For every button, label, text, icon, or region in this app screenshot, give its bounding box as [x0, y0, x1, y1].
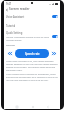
staticText: Quick Setting	[6, 31, 23, 35]
button[interactable]: Recents	[14, 104, 19, 109]
button[interactable]: Quick Setting	[4, 30, 60, 42]
staticText: Speech rate	[25, 52, 40, 56]
button[interactable]: Back	[4, 7, 9, 12]
staticText: Screen reader	[9, 7, 30, 11]
button[interactable]: Increase speech rate	[49, 49, 59, 58]
button[interactable]: Home	[30, 104, 35, 109]
staticText: Tutorial	[6, 24, 16, 28]
button[interactable]: Speech rate	[15, 49, 49, 58]
staticText: 9:41	[6, 2, 12, 6]
button[interactable]: Voice Assistant	[4, 12, 60, 21]
button[interactable]: Tutorial	[4, 21, 60, 30]
button[interactable]: Decrease speech rate	[5, 49, 15, 58]
staticText: Voice Assistant	[6, 15, 25, 19]
staticText: When Voice Assistant is on, your device …	[6, 60, 58, 72]
button[interactable]: Back	[45, 104, 50, 109]
staticText: If you turned Voice Assistant on acciden…	[6, 73, 58, 82]
staticText: Settings	[6, 44, 15, 47]
staticText: Use the Accessibility shortcut to turn o…	[6, 36, 50, 42]
